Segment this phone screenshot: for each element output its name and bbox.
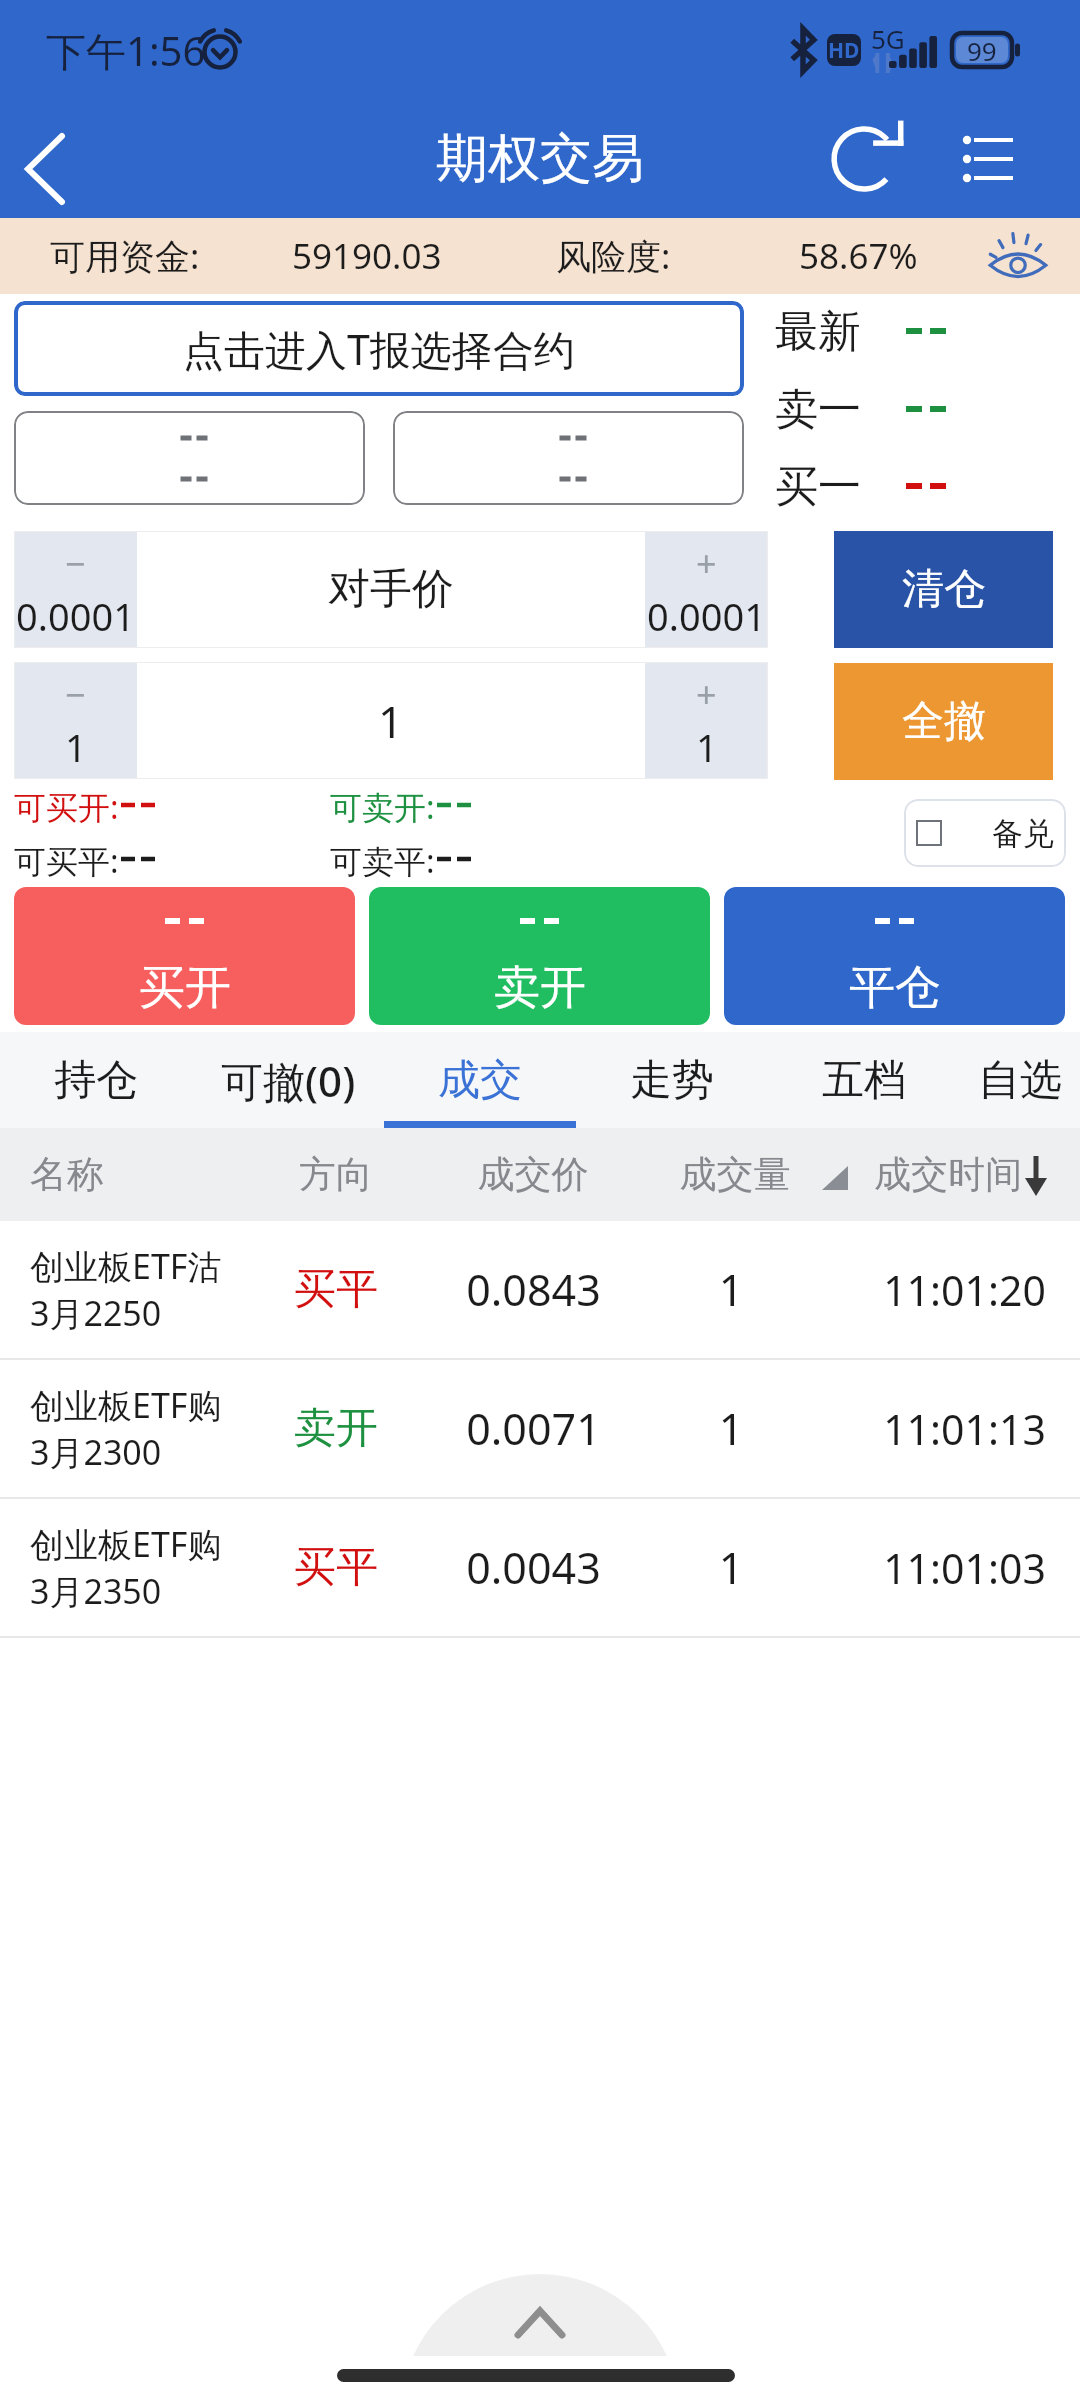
staticText: HD xyxy=(828,36,860,65)
staticText: 买一 xyxy=(775,460,861,512)
button[interactable]: Scroll to top xyxy=(401,2274,679,2356)
staticText: 名称 xyxy=(30,1151,104,1198)
button[interactable]: 自选 xyxy=(960,1032,1080,1128)
button[interactable]: 平仓 xyxy=(724,887,1065,1025)
staticText: 清仓 xyxy=(902,563,986,616)
staticText: 卖开 xyxy=(246,1402,426,1455)
staticText: 成交 xyxy=(438,1054,522,1107)
button[interactable]: 买开 xyxy=(14,887,355,1025)
staticText: + xyxy=(696,670,717,719)
staticText: 买平 xyxy=(246,1263,426,1316)
staticText: 11:01:20 xyxy=(835,1262,1080,1318)
staticText: 卖一 xyxy=(775,383,861,435)
staticText: 下午1:56 xyxy=(46,23,206,78)
staticText: 创业板ETF沽 3月2250 xyxy=(30,1243,222,1336)
button[interactable]: Back xyxy=(0,100,110,218)
staticText: 1 xyxy=(641,1399,821,1458)
staticText: 五档 xyxy=(822,1054,906,1107)
staticText: − xyxy=(65,539,86,588)
staticText: 平仓 xyxy=(849,959,941,1017)
staticText: 0.0071 xyxy=(426,1399,641,1458)
staticText: 风险度: xyxy=(556,232,671,280)
staticText: 可卖平: xyxy=(330,839,435,879)
staticText: 0.0043 xyxy=(426,1538,641,1597)
staticText: 点击进入T报选择合约 xyxy=(183,321,575,377)
staticText: 0.0001 xyxy=(16,590,135,642)
staticText: 卖开 xyxy=(494,959,586,1017)
button[interactable] xyxy=(14,411,365,505)
staticText: 持仓 xyxy=(54,1054,138,1107)
staticText: 1 xyxy=(641,1538,821,1597)
button[interactable]: Toggle visibility xyxy=(982,220,1054,292)
button[interactable]: 清仓 xyxy=(834,531,1053,648)
staticText: 买开 xyxy=(139,959,231,1017)
staticText: 对手价 xyxy=(328,563,454,616)
button[interactable]: 五档 xyxy=(768,1032,960,1128)
button[interactable]: Refresh xyxy=(809,101,925,217)
staticText: 1 xyxy=(65,721,87,773)
staticText: 可卖开: xyxy=(330,785,435,825)
staticText: 可撤(0) xyxy=(221,1052,356,1109)
staticText: 1 xyxy=(641,1260,821,1319)
staticText: 创业板ETF购 3月2300 xyxy=(30,1382,222,1475)
button[interactable]: + xyxy=(645,531,768,648)
staticText: 自选 xyxy=(978,1054,1062,1107)
staticText: 创业板ETF购 3月2350 xyxy=(30,1521,222,1614)
staticText: 0.0001 xyxy=(647,590,766,642)
staticText: 59190.03 xyxy=(292,232,442,280)
button[interactable]: Menu xyxy=(932,101,1048,217)
staticText: 58.67% xyxy=(799,232,918,280)
staticText: 成交时间 xyxy=(872,1151,1024,1198)
staticText: 1 xyxy=(378,691,404,751)
staticText: 0.0843 xyxy=(426,1260,641,1319)
staticText: 可买平: xyxy=(14,839,119,879)
button[interactable]: 全撤 xyxy=(834,663,1053,780)
button[interactable]: 可撤(0) xyxy=(192,1032,384,1128)
staticText: − xyxy=(65,670,86,719)
button[interactable]: 备兑 xyxy=(904,799,1066,867)
button[interactable]: 点击进入T报选择合约 xyxy=(14,301,744,396)
button[interactable]: 成交 xyxy=(384,1032,576,1128)
button[interactable]: 卖开 xyxy=(369,887,710,1025)
button[interactable] xyxy=(393,411,744,505)
staticText: 11:01:13 xyxy=(835,1401,1080,1457)
staticText: + xyxy=(696,539,717,588)
staticText: 99 xyxy=(967,33,997,68)
staticText: 可买开: xyxy=(14,785,119,825)
button[interactable]: 创业板ETF购 3月2300 xyxy=(0,1360,1080,1497)
button[interactable]: 创业板ETF购 3月2350 xyxy=(0,1499,1080,1636)
staticText: 方向 xyxy=(261,1151,411,1198)
staticText: 全撤 xyxy=(902,695,986,748)
staticText: 走势 xyxy=(630,1054,714,1107)
staticText: 期权交易 xyxy=(436,126,644,192)
button[interactable]: + xyxy=(645,662,768,779)
staticText: 可用资金: xyxy=(50,232,200,280)
button[interactable]: 走势 xyxy=(576,1032,768,1128)
staticText: 1 xyxy=(696,721,718,773)
staticText: 备兑 xyxy=(992,814,1054,853)
staticText: 成交量 xyxy=(660,1151,810,1198)
button[interactable]: 持仓 xyxy=(0,1032,192,1128)
staticText: 最新 xyxy=(775,305,861,357)
staticText: 5G xyxy=(871,21,905,56)
button[interactable]: − xyxy=(14,531,137,648)
staticText: 11:01:03 xyxy=(835,1540,1080,1596)
button[interactable]: − xyxy=(14,662,137,779)
staticText: 买平 xyxy=(246,1541,426,1594)
staticText: 成交价 xyxy=(458,1151,608,1198)
button[interactable]: 创业板ETF沽 3月2250 xyxy=(0,1221,1080,1358)
